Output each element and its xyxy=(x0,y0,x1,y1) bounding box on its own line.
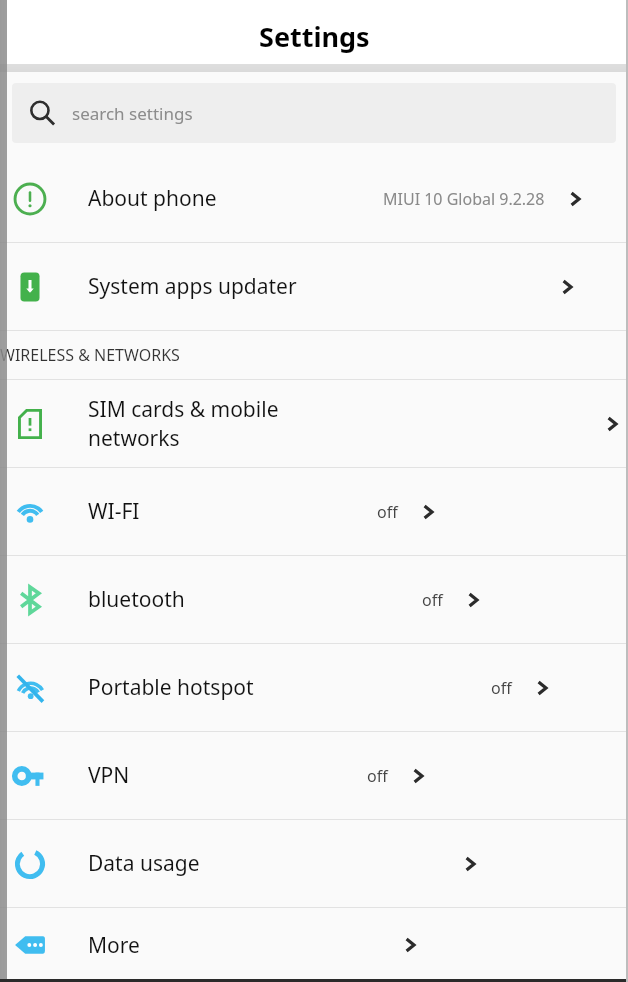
button[interactable]: More icon xyxy=(0,908,628,982)
other: VPN icon xyxy=(0,759,60,793)
button[interactable]: SIM icon xyxy=(0,380,628,467)
staticText: bluetooth xyxy=(88,585,185,614)
staticText: off xyxy=(377,501,398,523)
staticText: WIRELESS & NETWORKS xyxy=(0,344,180,366)
staticText: off xyxy=(367,765,388,787)
staticText: Settings xyxy=(259,18,370,55)
staticText: MIUI 10 Global 9.2.28 xyxy=(383,188,545,210)
other: Wi-Fi icon xyxy=(0,495,60,529)
other: Updater icon xyxy=(0,270,60,304)
staticText: About phone xyxy=(88,184,217,213)
button[interactable]: Updater icon xyxy=(0,243,628,330)
staticText: SIM cards & mobile networks xyxy=(88,395,342,453)
button[interactable]: Wi-Fi icon xyxy=(0,468,628,555)
other: Bluetooth icon xyxy=(0,583,60,617)
staticText: VPN xyxy=(88,761,130,790)
other: SIM icon xyxy=(0,407,60,441)
staticText: WI-FI xyxy=(88,497,140,526)
staticText: More xyxy=(88,931,140,960)
other: Hotspot icon xyxy=(0,671,60,705)
button[interactable]: VPN icon xyxy=(0,732,628,819)
staticText: off xyxy=(491,677,512,699)
other: More icon xyxy=(0,928,60,962)
staticText: search settings xyxy=(72,102,193,125)
staticText: Data usage xyxy=(88,849,200,878)
other: Data usage icon xyxy=(0,847,60,881)
button[interactable]: Bluetooth icon xyxy=(0,556,628,643)
button[interactable]: Data usage icon xyxy=(0,820,628,907)
staticText: System apps updater xyxy=(88,272,297,301)
button[interactable]: search settings xyxy=(12,83,616,143)
staticText: Portable hotspot xyxy=(88,673,254,702)
staticText: off xyxy=(422,589,443,611)
other: About phone icon xyxy=(0,182,60,216)
button[interactable]: About phone icon xyxy=(0,155,628,242)
button[interactable]: Hotspot icon xyxy=(0,644,628,731)
